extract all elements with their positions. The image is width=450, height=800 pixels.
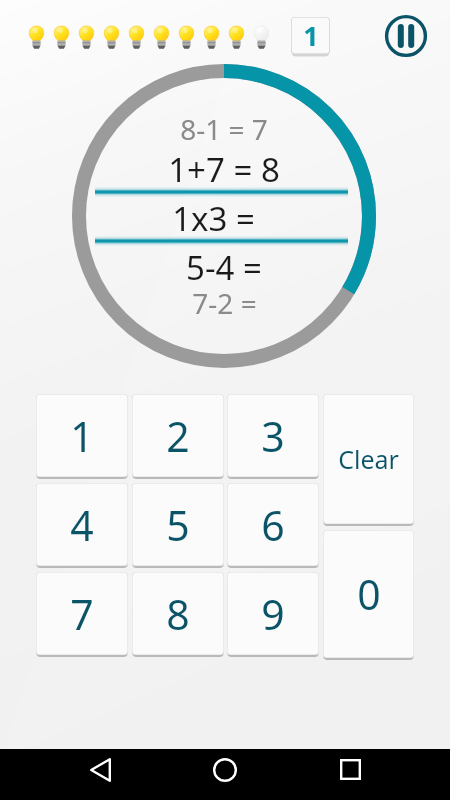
staticText: 5 [166,497,190,553]
button[interactable]: 2 [132,394,224,477]
staticText: Clear [338,442,399,476]
staticText: 5-4 = [186,245,262,290]
button[interactable]: 0 [323,530,414,658]
button[interactable]: 1 [291,17,330,54]
staticText: 8 [166,586,190,642]
staticText: 4 [70,497,94,553]
staticText: 1+7 = 8 [168,147,280,192]
staticText: 2 [166,408,190,464]
button[interactable]: 5 [132,483,224,566]
button[interactable]: 3 [227,394,319,477]
staticText: 3 [261,408,285,464]
staticText: 0 [357,566,381,622]
button[interactable]: Back [76,744,124,795]
staticText: 7 [70,586,94,642]
staticText: 6 [261,497,285,553]
button[interactable]: 7 [36,572,128,655]
button[interactable]: Home [201,744,249,795]
staticText: 8-1 = 7 [180,110,268,148]
button[interactable]: 9 [227,572,319,655]
staticText: 7-2 = [192,284,257,322]
button[interactable]: 4 [36,483,128,566]
staticText: 1 [303,17,319,54]
staticText: 1x3 = [172,196,255,241]
staticText: 9 [261,586,285,642]
staticText: 1 [70,408,94,464]
button[interactable]: Clear [323,394,414,524]
button[interactable]: 1 [36,394,128,477]
button[interactable]: Pause [383,13,429,59]
button[interactable]: 6 [227,483,319,566]
button[interactable]: Recents [326,744,374,795]
button[interactable]: 8 [132,572,224,655]
